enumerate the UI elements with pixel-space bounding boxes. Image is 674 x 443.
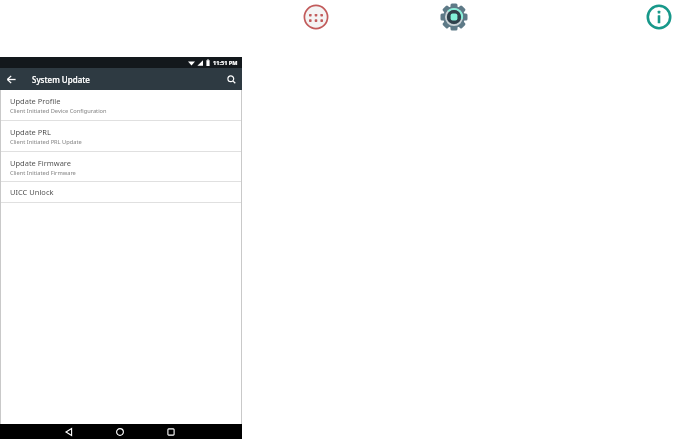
staticText: UICC Unlock [10, 187, 54, 197]
button[interactable]: Update Profile [1, 90, 241, 120]
staticText: Update PRL [10, 127, 51, 137]
button[interactable] [163, 424, 178, 439]
button[interactable]: Update Firmware [1, 152, 241, 181]
button[interactable] [112, 424, 127, 439]
button[interactable] [0, 68, 22, 90]
staticText: 11:51 PM [213, 59, 238, 67]
button[interactable] [440, 3, 468, 31]
button[interactable] [303, 4, 329, 30]
staticText: Client Initiated PRL Update [10, 138, 82, 146]
staticText: Client Initiated Firmware [10, 169, 76, 177]
staticText: Client Initiated Device Configuration [10, 107, 107, 115]
staticText: Update Firmware [10, 158, 72, 168]
button[interactable] [61, 424, 76, 439]
staticText: Update Profile [10, 96, 61, 106]
staticText: System Update [32, 74, 90, 85]
button[interactable] [646, 4, 672, 30]
button[interactable]: Update PRL [1, 121, 241, 151]
button[interactable] [220, 68, 242, 90]
button[interactable]: UICC Unlock [1, 182, 241, 202]
